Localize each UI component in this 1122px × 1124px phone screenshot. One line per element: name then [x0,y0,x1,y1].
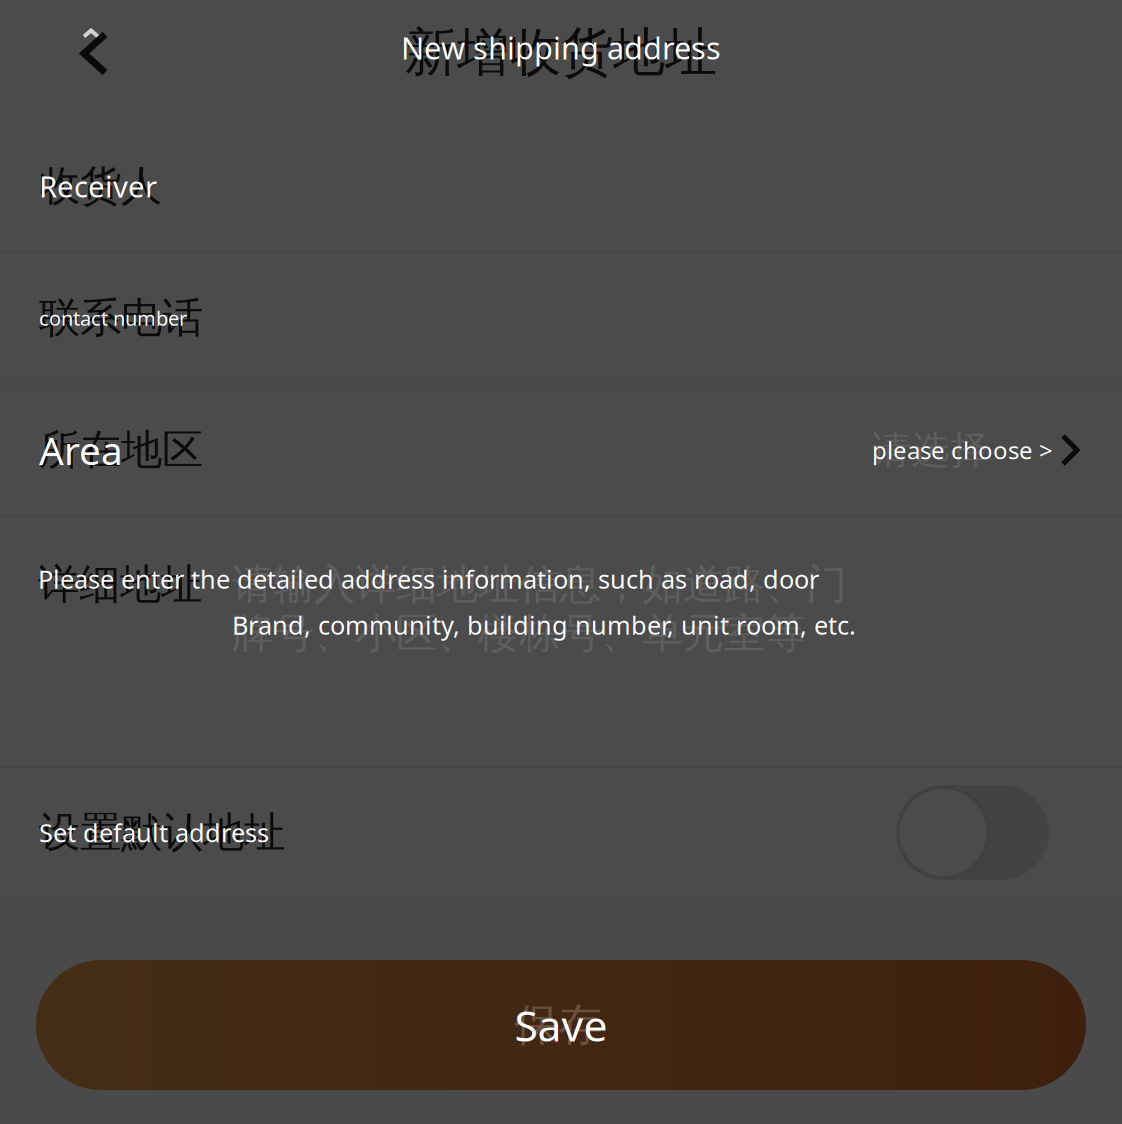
button[interactable]: 所在地区 [0,385,1122,515]
staticText: 所在地区 [39,425,203,475]
staticText: Brand, community, building number, unit … [232,608,856,642]
staticText: 新增收货地址 [405,21,717,84]
staticText: 牌号、小区、楼栋号、单元室等 [232,608,806,659]
staticText: Area [39,424,123,476]
staticText: Save [514,997,607,1053]
staticText: 联系电话 [39,293,203,343]
button[interactable]: 保存 [36,960,1086,1090]
button[interactable]: 收货人 [0,121,1122,251]
staticText: 收货人 [39,161,162,211]
staticText: Receiver [39,166,157,205]
staticText: 设置默认地址 [39,807,285,858]
staticText: 请选择 [872,426,989,474]
button[interactable]: Set default address, off [896,785,1049,880]
staticText: 请输入详细地址信息，如道路、门 [232,559,847,610]
button[interactable]: 联系电话 [0,253,1122,383]
staticText: please choose > [872,434,1053,466]
button[interactable]: Back [0,8,130,112]
staticText: New shipping address [401,27,721,68]
staticText: Please enter the detailed address inform… [38,562,819,596]
staticText: Set default address [39,816,269,849]
staticText: contact number [39,305,187,331]
staticText: 详细地址 [38,559,202,610]
staticText: 保存 [514,998,602,1052]
